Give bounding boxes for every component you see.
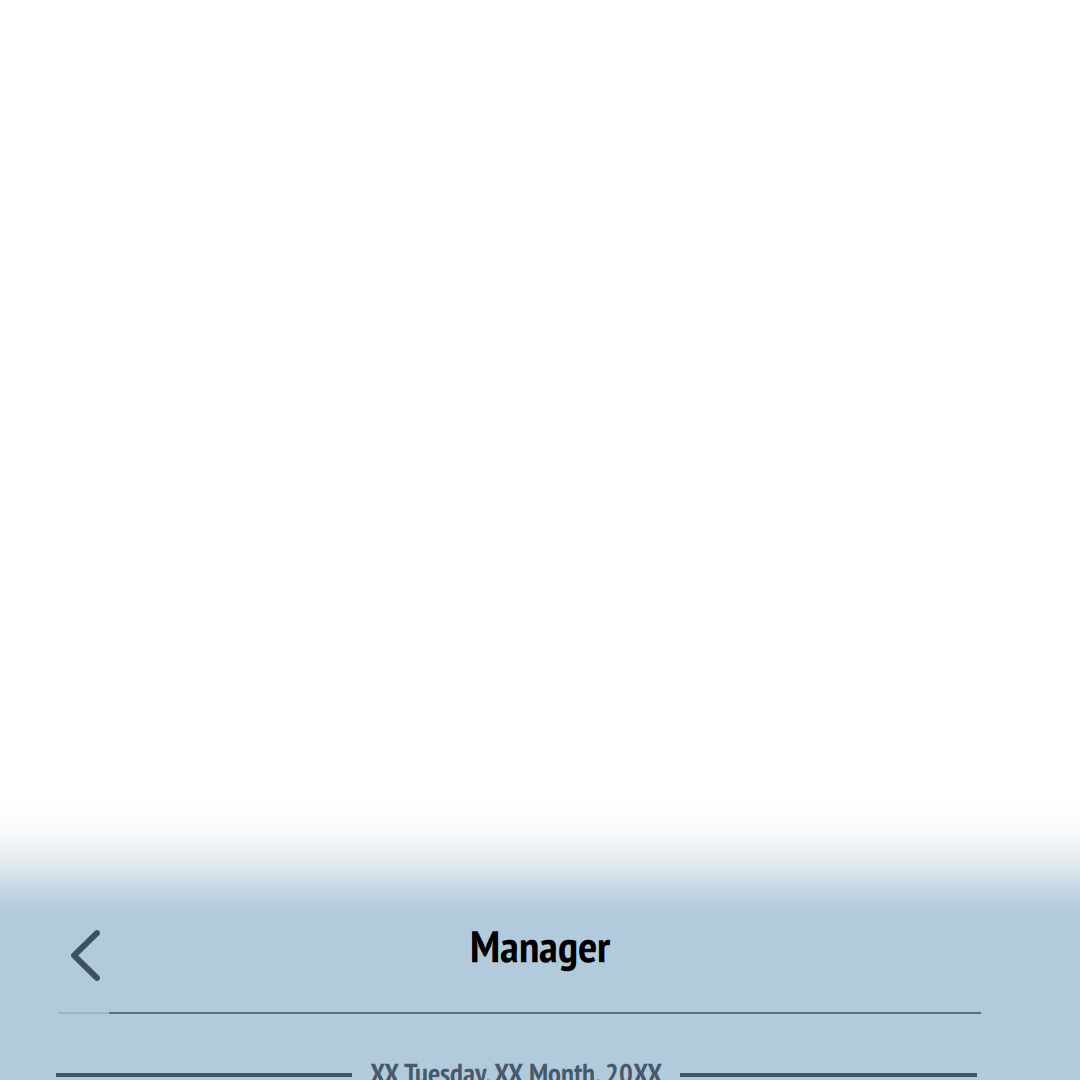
staticText: Manager <box>470 916 610 975</box>
button[interactable]: Back <box>43 913 128 998</box>
staticText: XX Tuesday, XX Month, 20XX <box>370 1054 662 1080</box>
